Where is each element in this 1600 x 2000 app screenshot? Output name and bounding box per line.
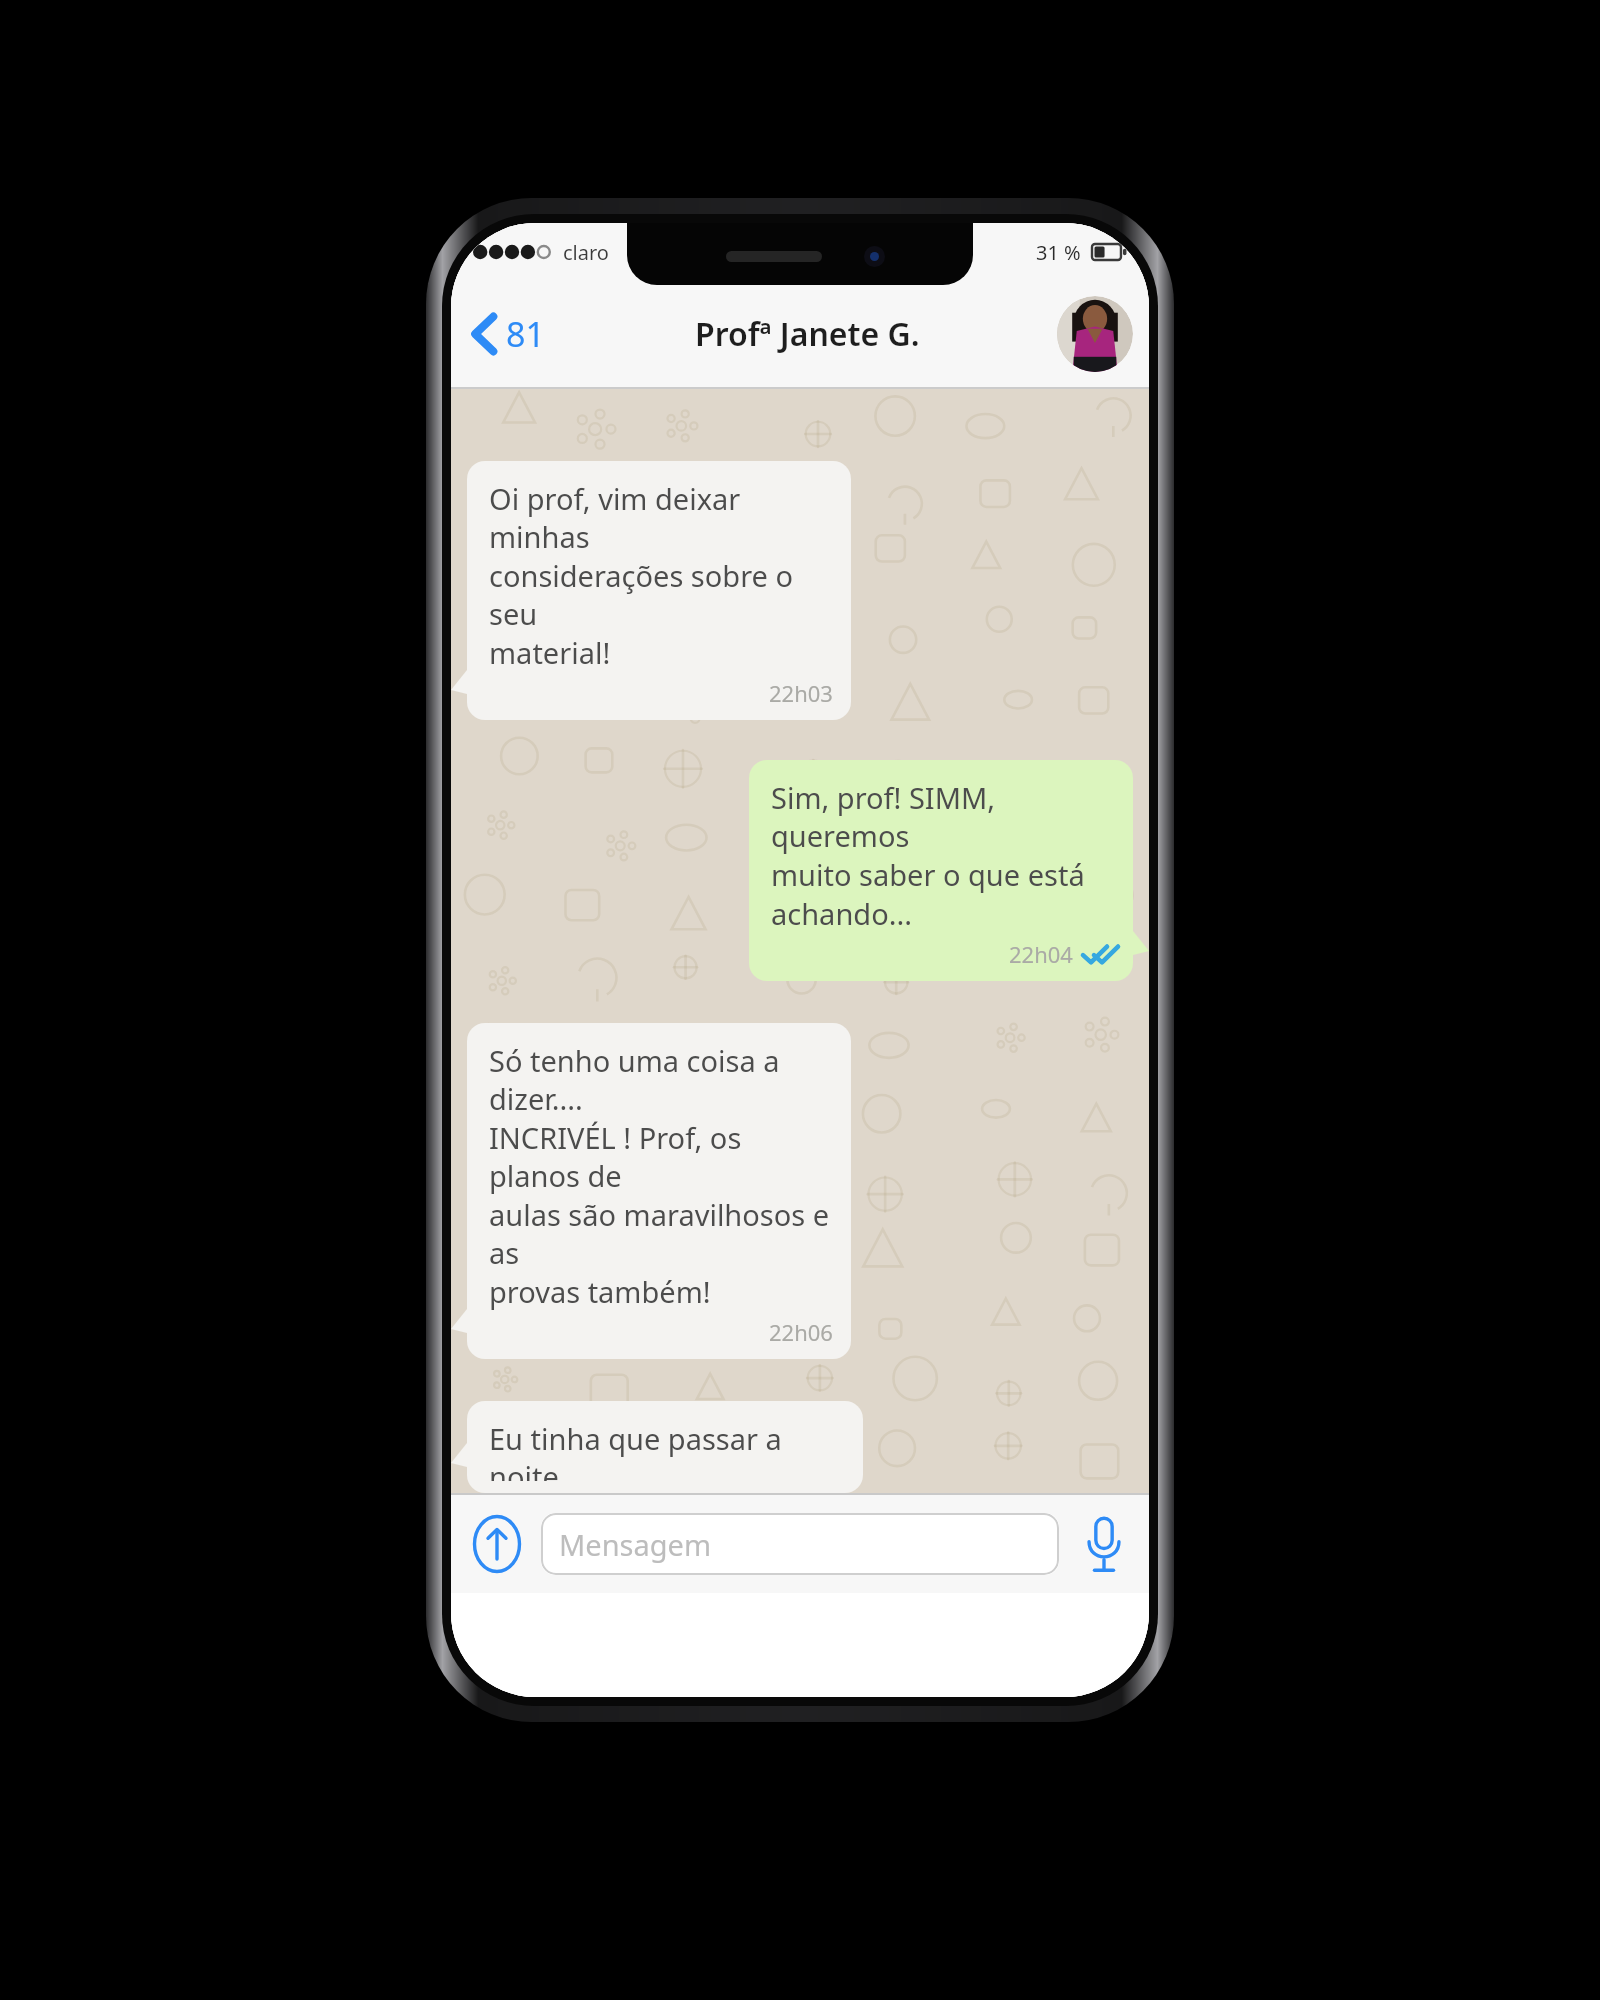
staticText: aulas são maravilhosos e as — [489, 1195, 833, 1272]
staticText: provas também! — [489, 1272, 711, 1311]
button[interactable]: Só tenho uma coisa a dizer.... — [467, 1023, 851, 1359]
staticText: material! — [489, 633, 611, 672]
button[interactable]: Sim, prof! SIMM, queremos — [749, 760, 1133, 981]
staticText: considerações sobre o seu — [489, 556, 833, 633]
button[interactable]: Send media — [469, 1512, 525, 1576]
staticText: 22h03 — [769, 678, 833, 708]
staticText: Mensagem — [559, 1525, 712, 1564]
staticText: muito saber o que está — [771, 855, 1085, 894]
staticText: achando... — [771, 894, 912, 933]
staticText: INCRIVÉL ! Prof, os planos de — [489, 1118, 833, 1195]
staticText: 31 % — [1036, 239, 1081, 266]
staticText: Eu tinha que passar a noite — [489, 1419, 845, 1481]
staticText: Profª Janete G. — [695, 312, 920, 356]
button[interactable]: Mensagem — [541, 1513, 1059, 1575]
button[interactable]: Oi prof, vim deixar minhas — [467, 461, 851, 720]
staticText: Oi prof, vim deixar minhas — [489, 479, 833, 556]
staticText: claro — [563, 239, 609, 266]
staticText: 4 — [627, 239, 639, 266]
staticText: 22h04 — [1009, 939, 1073, 969]
staticText: 22h06 — [769, 1317, 833, 1347]
staticText: Sim, prof! SIMM, queremos — [771, 778, 1115, 855]
staticText: 81 — [506, 311, 545, 357]
button[interactable]: Eu tinha que passar a noite — [467, 1401, 863, 1493]
button[interactable]: Contact photo — [1057, 296, 1133, 372]
button[interactable]: 81 — [457, 299, 559, 369]
staticText: Só tenho uma coisa a dizer.... — [489, 1041, 833, 1118]
button[interactable]: Voice message — [1077, 1511, 1131, 1577]
